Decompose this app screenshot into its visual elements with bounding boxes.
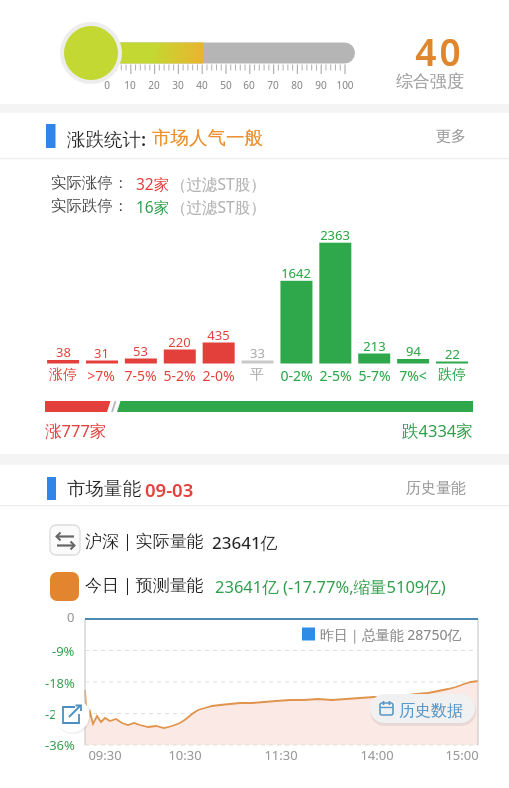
staticText: 213	[363, 337, 386, 355]
staticText: 53	[133, 342, 148, 360]
staticText: 40	[196, 78, 208, 92]
staticText: -36%	[45, 736, 75, 754]
staticText: 33	[250, 344, 265, 362]
staticText: 11:30	[264, 746, 298, 764]
staticText: 历史量能	[406, 479, 466, 498]
staticText: 综合强度	[396, 71, 464, 92]
staticText: 2363	[320, 226, 350, 244]
staticText: 涨777家	[45, 419, 107, 442]
staticText: 今日｜预测量能	[85, 575, 204, 596]
staticText: 20	[148, 78, 160, 92]
staticText: 2-5%	[319, 366, 352, 385]
staticText: -9%	[52, 642, 75, 660]
staticText: 23641亿 (-17.77%,缩量5109亿)	[215, 575, 446, 598]
button[interactable]	[51, 694, 93, 736]
staticText: 实际跌停：	[51, 196, 129, 216]
staticText: 15:00	[445, 746, 479, 764]
staticText: 90	[315, 78, 327, 92]
staticText: 70	[267, 78, 279, 92]
staticText: 0	[67, 608, 75, 626]
staticText: 跌4334家	[402, 419, 473, 442]
staticText: -27%	[45, 705, 75, 723]
staticText: 38	[56, 343, 71, 361]
staticText: 60	[243, 78, 255, 92]
staticText: 14:00	[360, 746, 394, 764]
staticText: 1642	[281, 264, 311, 282]
button[interactable]	[370, 694, 475, 723]
staticText: 80	[291, 78, 303, 92]
staticText: 100	[336, 78, 354, 92]
staticText: 0-2%	[280, 366, 313, 385]
staticText: 32家	[136, 173, 170, 194]
staticText: （过滤ST股）	[171, 173, 266, 194]
staticText: 10	[124, 78, 136, 92]
staticText: 22	[445, 345, 460, 363]
staticText: 更多	[436, 127, 466, 146]
staticText: 50	[220, 78, 232, 92]
button[interactable]: 沪深｜实际量能	[85, 531, 204, 552]
staticText: 沪深｜实际量能	[85, 531, 204, 552]
staticText: 7-5%	[124, 366, 157, 385]
staticText: 40	[415, 26, 464, 76]
staticText: （过滤ST股）	[171, 196, 266, 217]
staticText: 涨停	[49, 366, 77, 384]
staticText: 涨跌统计:	[67, 126, 147, 151]
staticText: 30	[172, 78, 184, 92]
staticText: 09:30	[88, 746, 122, 764]
staticText: -18%	[45, 674, 75, 692]
staticText: 跌停	[438, 366, 466, 384]
staticText: 平	[250, 366, 264, 384]
staticText: 16家	[136, 196, 170, 217]
staticText: 435	[207, 326, 230, 344]
staticText: 5-2%	[163, 366, 196, 385]
staticText: 09-03	[145, 477, 194, 502]
staticText: 0	[104, 78, 110, 92]
staticText: 2-0%	[202, 366, 235, 385]
staticText: 历史数据	[399, 701, 463, 721]
staticText: 220	[168, 333, 191, 351]
staticText: 市场量能	[67, 477, 141, 500]
button[interactable]	[45, 518, 475, 558]
button[interactable]	[45, 566, 475, 606]
button[interactable]: 更多	[436, 127, 466, 146]
staticText: 23641亿	[212, 531, 278, 554]
staticText: 5-7%	[358, 366, 391, 385]
staticText: 7%<	[399, 366, 427, 385]
staticText: 94	[406, 342, 421, 360]
button[interactable]: 历史数据	[399, 701, 463, 721]
button[interactable]: 历史量能	[406, 479, 466, 498]
staticText: 10:30	[168, 746, 202, 764]
staticText: 实际涨停：	[51, 173, 129, 193]
staticText: 昨日｜总量能 28750亿	[320, 625, 462, 644]
staticText: >7%	[87, 366, 115, 385]
staticText: 市场人气一般	[152, 126, 263, 149]
staticText: 31	[94, 344, 109, 362]
